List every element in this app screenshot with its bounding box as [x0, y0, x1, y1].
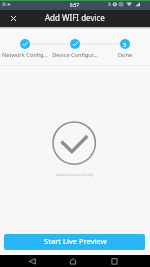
staticText: 6:57 [70, 2, 80, 8]
button[interactable]: Back [0, 255, 50, 267]
button[interactable]: Close [6, 11, 21, 26]
staticText: Network Config... [0, 51, 50, 59]
button[interactable]: Home [50, 255, 100, 267]
staticText: Added successfully [56, 172, 94, 178]
staticText: 3 [123, 41, 127, 48]
staticText: Start Live Preview [44, 236, 107, 246]
button[interactable]: Start Live Preview [4, 234, 145, 250]
staticText: Add WIFI device [45, 12, 105, 23]
button[interactable]: Recent apps [100, 255, 150, 267]
staticText: Device Configur... [50, 51, 100, 59]
staticText: Done [100, 51, 150, 59]
